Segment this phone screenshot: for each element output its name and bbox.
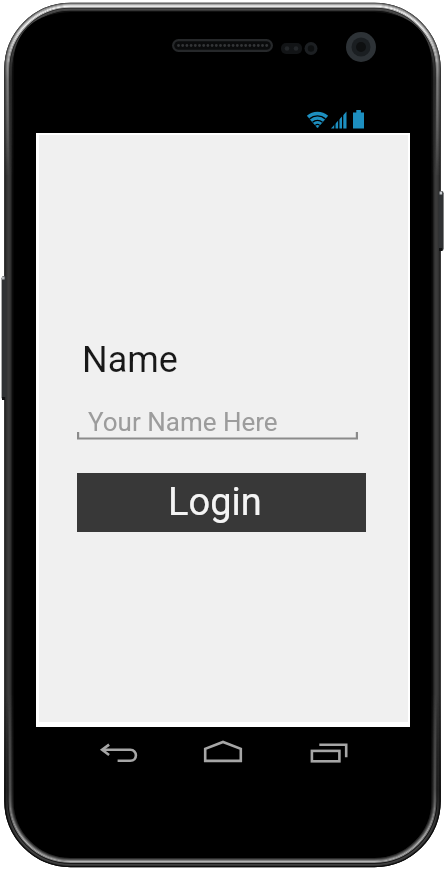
button[interactable]: Back — [67, 722, 171, 784]
button[interactable]: Recent apps — [275, 722, 379, 784]
button[interactable]: Login — [77, 473, 366, 532]
staticText: Name — [82, 339, 178, 381]
button[interactable]: Home — [171, 722, 275, 784]
staticText: Login — [168, 480, 262, 525]
button[interactable]: Your Name Here — [77, 400, 358, 440]
staticText: Your Name Here — [88, 407, 278, 437]
